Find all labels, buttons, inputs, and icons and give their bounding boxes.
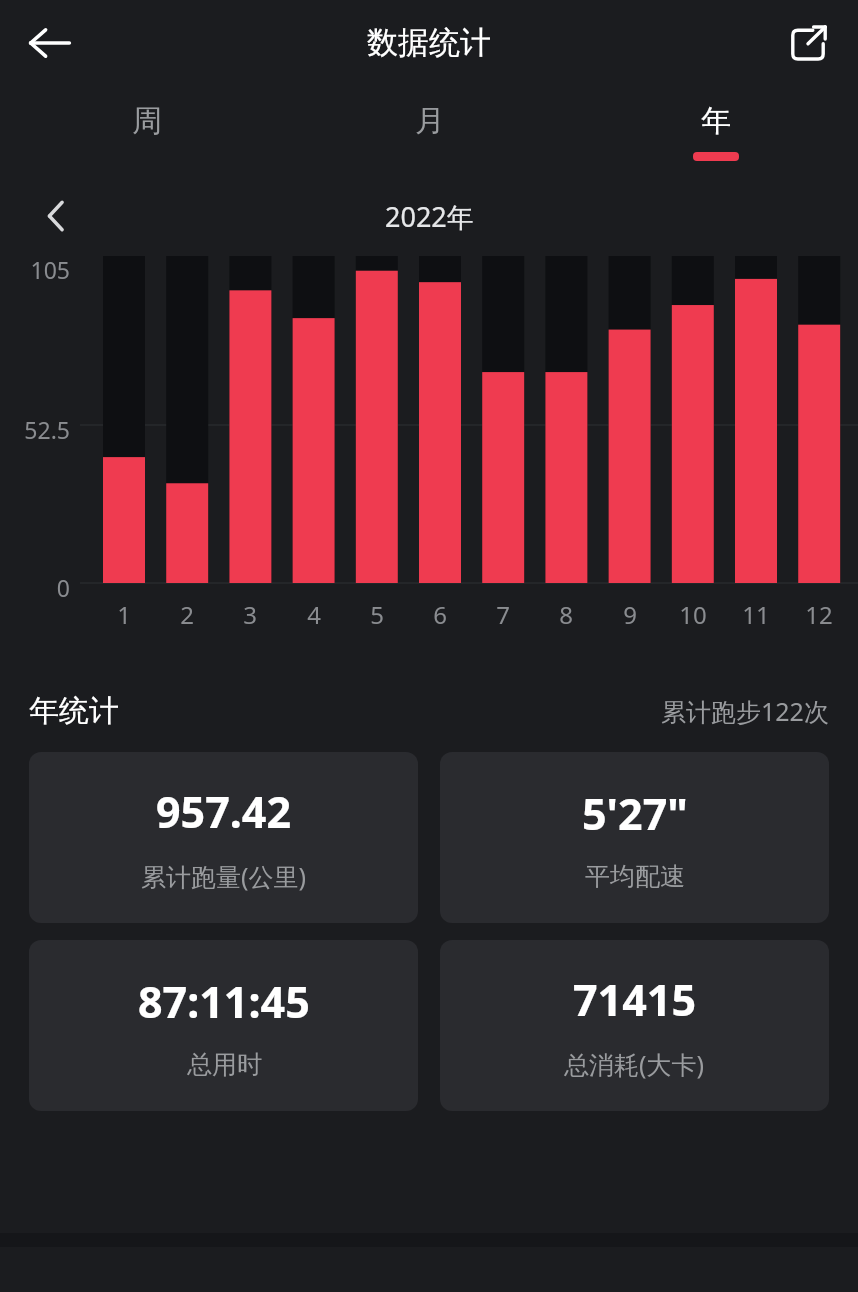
staticText: 71415: [573, 970, 696, 1029]
staticText: 10: [679, 598, 707, 631]
staticText: 9: [623, 598, 637, 631]
staticText: 年统计: [29, 692, 119, 730]
button[interactable]: Previous year: [18, 186, 94, 246]
staticText: 总用时: [187, 1049, 262, 1080]
staticText: 3: [243, 598, 257, 631]
staticText: 105: [30, 254, 70, 285]
staticText: 年: [701, 102, 731, 140]
staticText: 8: [559, 598, 573, 631]
staticText: 12: [805, 598, 833, 631]
staticText: 0: [56, 572, 70, 603]
button[interactable]: Share: [772, 7, 844, 79]
button[interactable]: 957.42: [29, 752, 418, 923]
staticText: 4: [307, 598, 321, 631]
button[interactable]: 月: [287, 85, 573, 182]
staticText: 月: [415, 102, 445, 140]
staticText: 52.5: [24, 414, 70, 445]
staticText: 2022年: [385, 198, 474, 235]
button[interactable]: 年: [573, 85, 858, 182]
staticText: 总消耗(大卡): [564, 1047, 705, 1081]
staticText: 957.42: [156, 782, 292, 841]
button[interactable]: Back: [14, 7, 86, 79]
staticText: 平均配速: [585, 861, 685, 892]
staticText: 5'27": [582, 784, 688, 843]
staticText: 7: [496, 598, 510, 631]
staticText: 5: [370, 598, 384, 631]
staticText: 累计跑量(公里): [141, 859, 307, 893]
staticText: 周: [132, 102, 162, 140]
staticText: 2: [180, 598, 194, 631]
button[interactable]: 5'27": [440, 752, 829, 923]
staticText: 87:11:45: [138, 972, 310, 1031]
button[interactable]: 周: [4, 85, 290, 182]
staticText: 11: [742, 598, 770, 631]
staticText: 1: [117, 598, 131, 631]
button[interactable]: 87:11:45: [29, 940, 418, 1111]
staticText: 累计跑步122次: [661, 694, 829, 728]
button[interactable]: 71415: [440, 940, 829, 1111]
staticText: 数据统计: [367, 23, 491, 62]
staticText: 6: [433, 598, 447, 631]
